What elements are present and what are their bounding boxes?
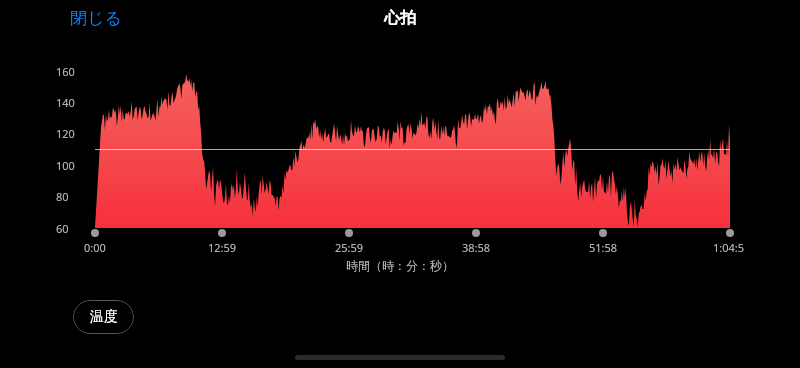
button[interactable]: 閉じる <box>68 6 120 27</box>
staticText: 160 <box>56 64 75 79</box>
staticText: 閉じる <box>70 8 120 27</box>
staticText: 0:00 <box>84 240 106 255</box>
staticText: 温度 <box>90 308 118 326</box>
staticText: 100 <box>56 158 75 173</box>
staticText: 38:58 <box>462 240 491 255</box>
staticText: 時間（時：分：秒） <box>346 258 454 273</box>
staticText: 51:58 <box>589 240 618 255</box>
staticText: 25:59 <box>335 240 364 255</box>
staticText: 140 <box>56 95 75 110</box>
staticText: 12:59 <box>208 240 237 255</box>
staticText: 120 <box>56 126 75 141</box>
button[interactable]: 温度 <box>73 300 134 334</box>
staticText: 心拍 <box>384 8 416 28</box>
staticText: 80 <box>56 189 69 204</box>
staticText: 1:04:5 <box>713 240 745 255</box>
staticText: 60 <box>56 221 69 236</box>
